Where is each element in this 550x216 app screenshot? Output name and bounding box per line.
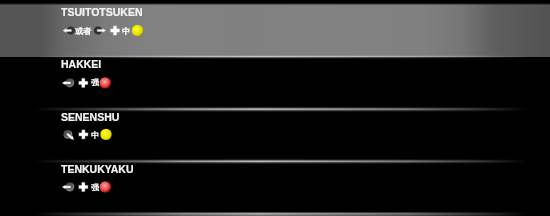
staticText: SENENSHU bbox=[61, 111, 120, 123]
staticText: TSUITOTSUKEN bbox=[61, 6, 143, 18]
staticText: 中 bbox=[91, 130, 99, 140]
staticText: HAKKEI bbox=[61, 58, 102, 70]
button[interactable]: TENKUKYAKU bbox=[0, 161, 550, 216]
staticText: 强 bbox=[91, 77, 99, 87]
staticText: 强 bbox=[91, 182, 99, 192]
button[interactable]: SENENSHU bbox=[0, 109, 550, 161]
button[interactable]: TSUITOTSUKEN bbox=[0, 4, 550, 57]
staticText: 中 bbox=[122, 26, 130, 36]
staticText: TENKUKYAKU bbox=[61, 163, 134, 175]
button[interactable]: HAKKEI bbox=[0, 56, 550, 109]
staticText: 或者 bbox=[75, 26, 91, 36]
